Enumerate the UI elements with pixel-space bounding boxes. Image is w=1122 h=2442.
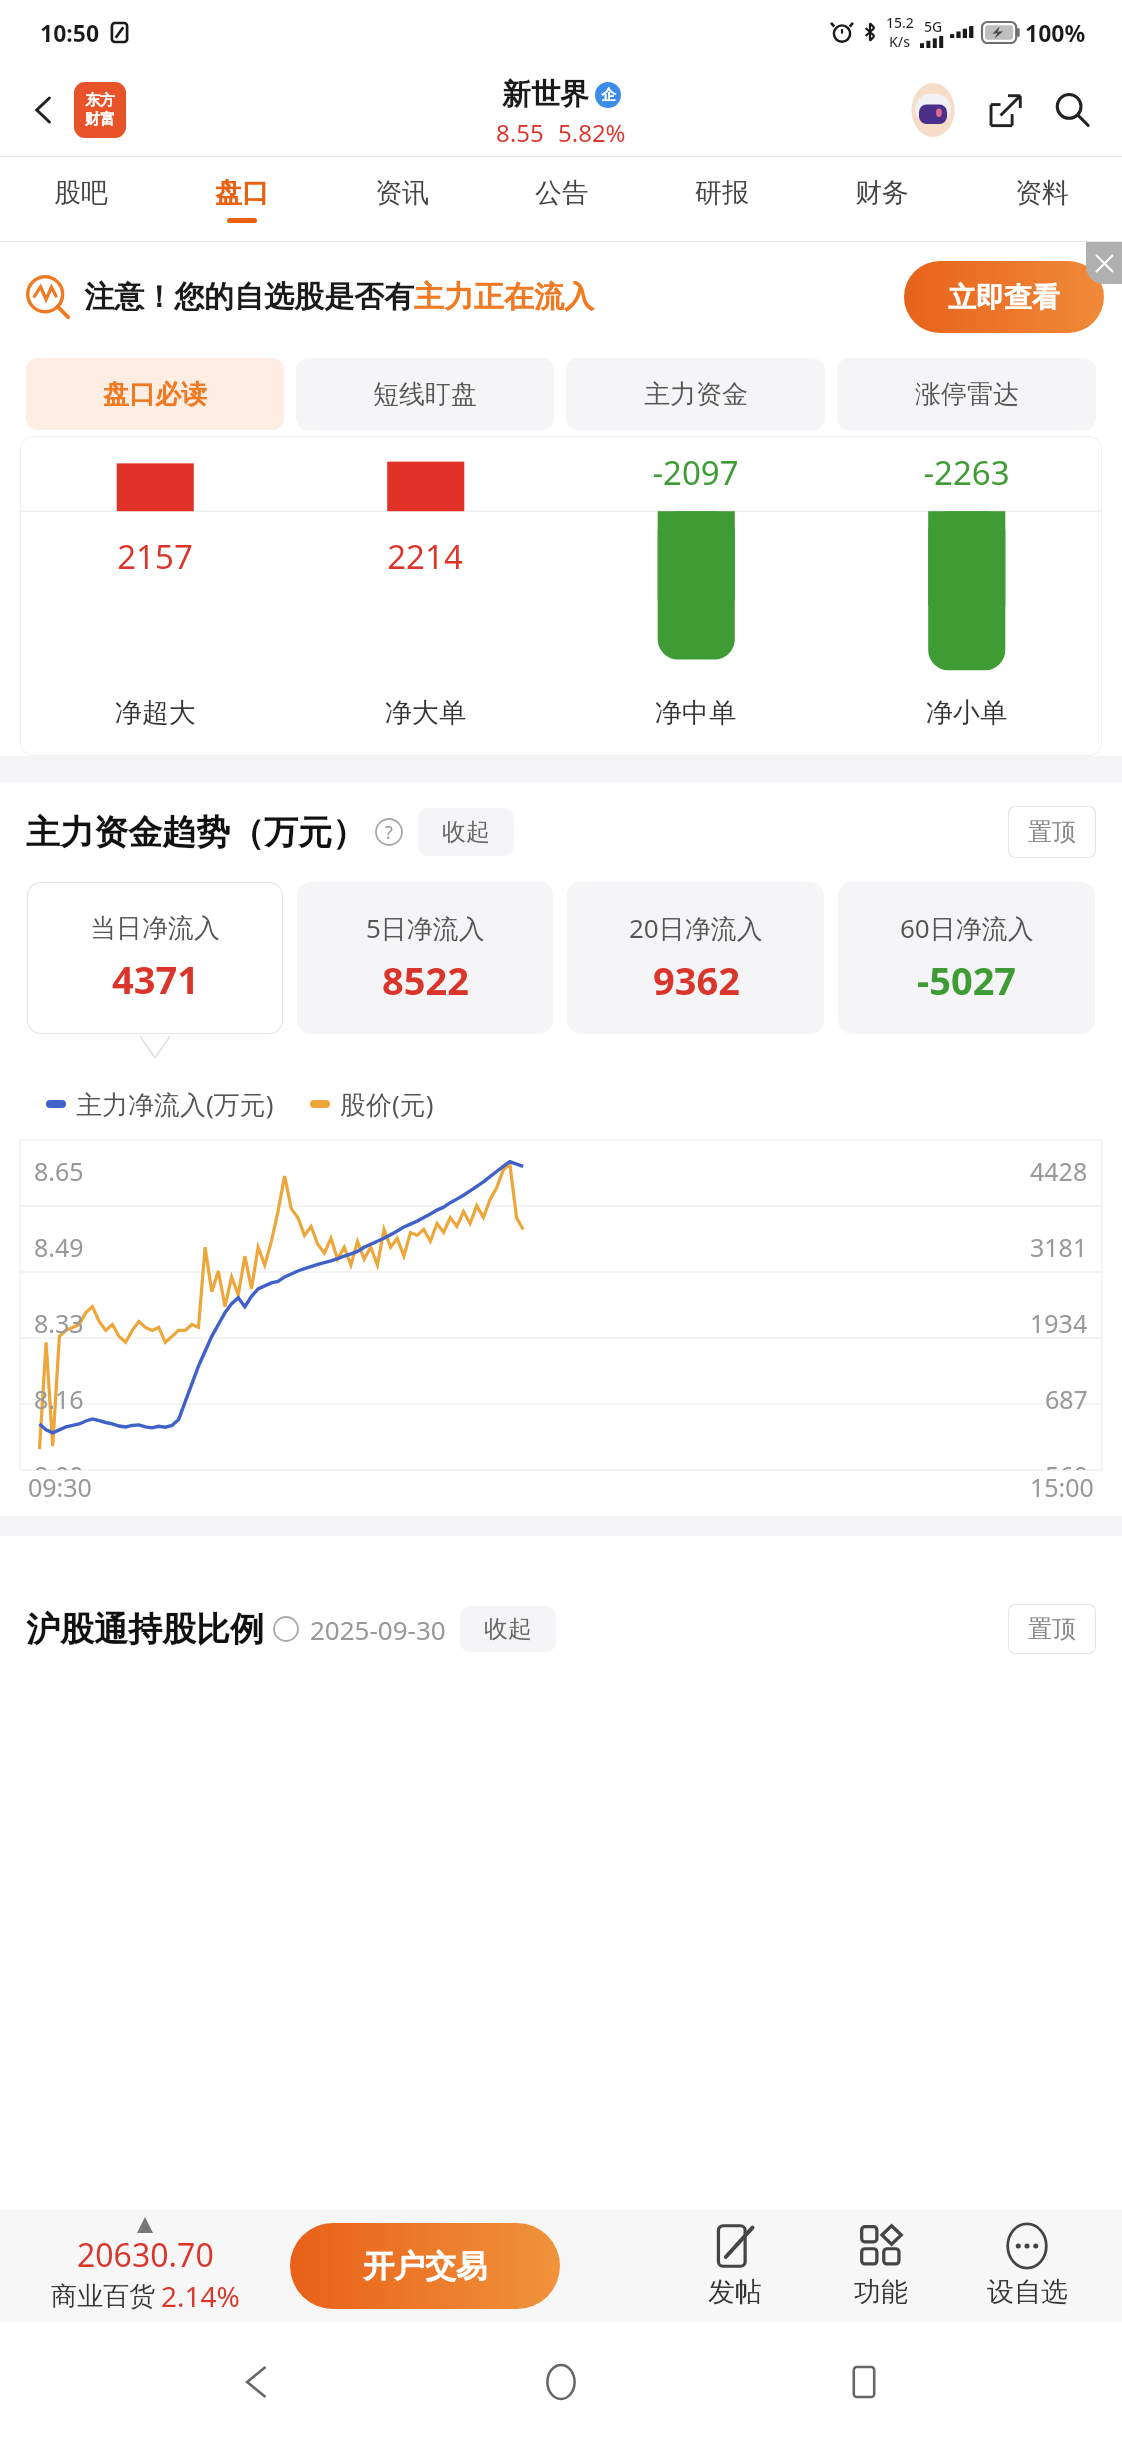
button[interactable]: AI assistant — [902, 79, 964, 141]
staticText: 注意！您的自选股是否有 — [84, 278, 414, 316]
button[interactable]: Search — [1044, 82, 1100, 138]
staticText: 8.00 — [34, 1458, 84, 1470]
button[interactable]: Back — [213, 2337, 303, 2427]
staticText: 盘口必读 — [103, 378, 207, 411]
staticText: 置顶 — [1028, 817, 1076, 847]
staticText: 8.65 — [34, 1154, 84, 1188]
button[interactable]: 20630.70 — [0, 2217, 290, 2315]
staticText: -2263 — [923, 450, 1010, 495]
button[interactable]: 主力资金 — [566, 358, 825, 430]
staticText: 公告 — [535, 176, 589, 210]
button[interactable]: 置顶 — [1008, 806, 1096, 858]
button[interactable]: Help — [374, 817, 404, 847]
button[interactable]: 盘口 — [161, 157, 322, 241]
staticText: 3181 — [1030, 1230, 1088, 1264]
button[interactable]: 设自选 — [954, 2210, 1100, 2322]
staticText: 功能 — [854, 2275, 908, 2309]
button[interactable]: 立即查看 — [904, 261, 1104, 333]
staticText: 净超大 — [115, 696, 196, 730]
staticText: 60日净流入 — [900, 910, 1034, 946]
staticText: 资料 — [1015, 176, 1069, 210]
button[interactable]: 当日净流入 — [27, 882, 283, 1034]
button[interactable]: 收起 — [418, 808, 514, 856]
button[interactable]: Back — [18, 84, 70, 136]
staticText: 收起 — [442, 817, 490, 847]
staticText: 2.14% — [161, 2277, 240, 2315]
button[interactable]: Close banner — [1086, 242, 1122, 284]
staticText: -560 — [1037, 1458, 1088, 1470]
button[interactable]: 研报 — [642, 157, 802, 241]
button[interactable]: 5日净流入 — [297, 882, 553, 1034]
staticText: 8.33 — [34, 1306, 84, 1340]
staticText: K/s — [889, 32, 911, 51]
button[interactable]: East Money logo — [74, 82, 126, 138]
staticText: 1934 — [1030, 1306, 1088, 1340]
staticText: 沪股通持股比例 — [26, 1608, 264, 1651]
button[interactable]: 公告 — [482, 157, 642, 241]
staticText: 涨停雷达 — [915, 378, 1019, 411]
staticText: 盘口 — [215, 176, 269, 210]
staticText: 8.55 — [496, 116, 544, 149]
staticText: 股价(元) — [340, 1086, 434, 1122]
staticText: 财富 — [85, 110, 115, 129]
staticText: 2157 — [117, 534, 193, 579]
staticText: 主力正在流入 — [414, 278, 594, 316]
staticText: 净小单 — [926, 696, 1007, 730]
button[interactable]: 60日净流入 — [838, 882, 1095, 1034]
staticText: 5.82% — [558, 116, 626, 149]
button[interactable]: 收起 — [460, 1606, 556, 1652]
button[interactable]: 置顶 — [1008, 1604, 1096, 1654]
button[interactable]: Home — [516, 2337, 606, 2427]
staticText: 发帖 — [708, 2275, 762, 2309]
staticText: 财务 — [855, 176, 909, 210]
staticText: 9362 — [653, 954, 740, 1006]
staticText: 企 — [601, 86, 616, 105]
staticText: 置顶 — [1028, 1614, 1076, 1644]
staticText: 主力资金趋势（万元） — [26, 811, 366, 854]
staticText: 20630.70 — [77, 2233, 214, 2277]
staticText: 开户交易 — [363, 2247, 487, 2286]
button[interactable]: 资料 — [962, 157, 1122, 241]
button[interactable]: 财务 — [802, 157, 962, 241]
button[interactable]: 股吧 — [0, 157, 161, 241]
staticText: -5027 — [917, 954, 1017, 1006]
staticText: 20日净流入 — [629, 910, 763, 946]
staticText: 5日净流入 — [366, 910, 485, 946]
staticText: -2097 — [652, 450, 739, 495]
staticText: 设自选 — [987, 2275, 1068, 2309]
staticText: 资讯 — [375, 176, 429, 210]
staticText: 15:00 — [1030, 1470, 1094, 1504]
staticText: 4428 — [1030, 1154, 1088, 1188]
button[interactable]: 开户交易 — [290, 2223, 560, 2309]
staticText: 净大单 — [385, 696, 466, 730]
button[interactable]: 注意！您的自选股是否有 — [24, 242, 1104, 352]
staticText: 商业百货 — [51, 2280, 155, 2313]
staticText: 净中单 — [655, 696, 736, 730]
staticText: 100% — [1025, 17, 1086, 48]
staticText: 收起 — [484, 1614, 532, 1644]
staticText: 09:30 — [28, 1470, 92, 1504]
button[interactable]: 短线盯盘 — [296, 358, 554, 430]
button[interactable]: 盘口必读 — [26, 358, 284, 430]
staticText: 10:50 — [40, 17, 100, 48]
button[interactable]: Share — [978, 82, 1034, 138]
button[interactable]: Recents — [819, 2337, 909, 2427]
staticText: 东方 — [85, 91, 115, 110]
staticText: 5G — [924, 17, 943, 36]
staticText: 新世界 — [502, 76, 589, 113]
staticText: 687 — [1045, 1382, 1088, 1416]
button[interactable]: 涨停雷达 — [837, 358, 1096, 430]
button[interactable]: 功能 — [808, 2210, 954, 2322]
staticText: 8.49 — [34, 1230, 84, 1264]
button[interactable]: 发帖 — [662, 2210, 808, 2322]
staticText: 当日净流入 — [90, 912, 220, 945]
staticText: 股吧 — [54, 176, 108, 210]
staticText: ? — [385, 820, 393, 845]
staticText: 2025-09-30 — [310, 1612, 446, 1647]
button[interactable]: 20日净流入 — [567, 882, 824, 1034]
staticText: 2214 — [387, 534, 463, 579]
button[interactable]: 资讯 — [322, 157, 482, 241]
button[interactable]: 2157 — [20, 436, 1102, 756]
staticText: 短线盯盘 — [373, 378, 477, 411]
staticText: 主力资金 — [644, 378, 748, 411]
